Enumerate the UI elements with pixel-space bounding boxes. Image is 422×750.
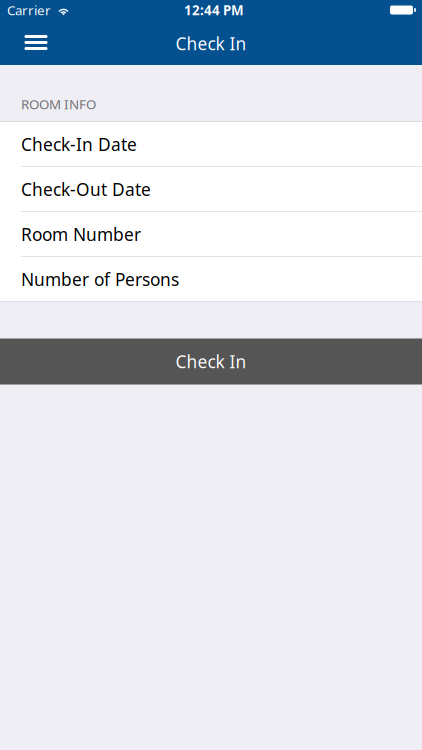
staticText: ROOM INFO <box>21 95 96 113</box>
button[interactable]: Check-Out Date <box>0 167 422 212</box>
button[interactable]: Menu <box>14 20 58 64</box>
staticText: Check In <box>175 350 246 373</box>
button[interactable]: Number of Persons <box>0 257 422 301</box>
button[interactable]: Check In <box>0 338 422 384</box>
staticText: Check-Out Date <box>21 178 151 201</box>
staticText: Room Number <box>21 223 141 246</box>
staticText: Carrier <box>7 1 51 19</box>
staticText: Check In <box>175 32 246 55</box>
button[interactable]: Check-In Date <box>0 122 422 167</box>
button[interactable]: Room Number <box>0 212 422 257</box>
staticText: Number of Persons <box>21 268 179 291</box>
staticText: Check-In Date <box>21 133 137 156</box>
staticText: 12:44 PM <box>184 1 244 19</box>
